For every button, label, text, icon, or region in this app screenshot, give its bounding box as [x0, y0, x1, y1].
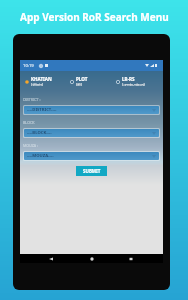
staticText: App Version RoR Search Menu: [20, 10, 169, 24]
button[interactable]: Recents: [129, 257, 133, 261]
staticText: 10:19: [23, 63, 34, 69]
button[interactable]: ----BLOCK----: [24, 129, 159, 137]
button[interactable]: ----MOUZA----: [24, 152, 159, 160]
staticText: SUBMIT: [83, 168, 101, 174]
button[interactable]: ----DISTRICT----: [24, 106, 159, 114]
staticText: DISTRICT :: [23, 97, 41, 102]
staticText: PLOT: [76, 76, 88, 82]
staticText: LR-RS: [122, 76, 135, 82]
staticText: MOUZA :: [23, 143, 38, 148]
button[interactable]: PLOT: [70, 75, 88, 88]
staticText: BLOCK: [23, 120, 35, 125]
button[interactable]: KHATIAN: [25, 75, 52, 88]
staticText: (এলআর-আরএস): [122, 82, 145, 88]
staticText: KHATIAN: [31, 76, 52, 82]
staticText: ----DISTRICT----: [27, 107, 57, 113]
button[interactable]: LR-RS: [116, 75, 145, 88]
button[interactable]: Back: [49, 257, 53, 261]
staticText: ----MOUZA----: [27, 153, 54, 159]
staticText: (খতিয়ান): [31, 82, 43, 88]
button[interactable]: Home: [90, 257, 94, 261]
button[interactable]: SUBMIT: [76, 166, 107, 176]
staticText: ----BLOCK----: [27, 130, 52, 136]
staticText: (প্লট): [76, 82, 83, 88]
